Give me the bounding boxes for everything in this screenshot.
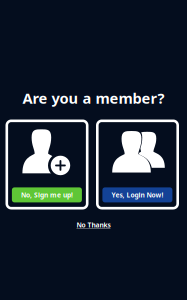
button[interactable]: No, Sign me up! bbox=[7, 121, 87, 208]
button[interactable]: Yes, Login Now! bbox=[97, 121, 178, 208]
staticText: No, Sign me up! bbox=[21, 190, 73, 199]
staticText: Yes, Login Now! bbox=[111, 190, 163, 199]
button[interactable]: No Thanks bbox=[63, 219, 123, 231]
staticText: Are you a member? bbox=[22, 88, 164, 108]
staticText: No Thanks bbox=[76, 221, 110, 229]
